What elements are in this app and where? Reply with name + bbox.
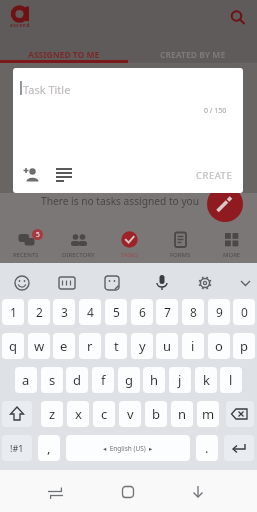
staticText: RECENTS	[13, 251, 39, 259]
staticText: 2	[36, 304, 43, 320]
staticText: Task Title	[23, 82, 71, 97]
staticText: t	[114, 337, 119, 355]
button[interactable]	[226, 401, 254, 427]
staticText: s	[49, 371, 56, 389]
button[interactable]: 0	[233, 299, 255, 325]
button[interactable]: z	[41, 401, 63, 427]
button[interactable]: 8	[182, 299, 204, 325]
staticText: There is no tasks assigned to you	[41, 194, 200, 208]
button[interactable]: u	[156, 333, 178, 359]
button[interactable]: .	[196, 435, 218, 461]
button[interactable]: h	[143, 367, 165, 393]
staticText: i	[191, 337, 195, 355]
button[interactable]: m	[197, 401, 219, 427]
button[interactable]: q	[2, 333, 24, 359]
staticText: ◂ English (US) ▸	[103, 444, 153, 453]
button[interactable]	[2, 401, 32, 427]
staticText: c	[101, 405, 108, 423]
button[interactable]: v	[119, 401, 141, 427]
button[interactable]	[224, 435, 254, 461]
button[interactable]	[185, 479, 211, 505]
button[interactable]	[226, 6, 250, 30]
button[interactable]: w	[28, 333, 50, 359]
staticText: ascend	[10, 22, 30, 28]
staticText: v	[127, 405, 134, 423]
staticText: b	[152, 405, 160, 423]
button[interactable]: t	[105, 333, 127, 359]
staticText: k	[203, 371, 210, 389]
button[interactable]	[19, 163, 43, 187]
button[interactable]	[42, 480, 68, 506]
button[interactable]: ASSIGNED TO ME	[0, 46, 128, 63]
button[interactable]: a	[15, 367, 37, 393]
staticText: 9	[216, 304, 223, 320]
button[interactable]	[207, 186, 243, 222]
button[interactable]: p	[233, 333, 255, 359]
staticText: ,	[47, 439, 51, 457]
button[interactable]: s	[41, 367, 63, 393]
button[interactable]: 3	[53, 299, 75, 325]
staticText: 7	[164, 304, 171, 320]
staticText: u	[163, 337, 172, 355]
button[interactable]: 5	[105, 299, 127, 325]
staticText: q	[9, 337, 17, 355]
staticText: n	[178, 405, 187, 423]
button[interactable]: 1	[2, 299, 24, 325]
button[interactable]	[115, 479, 141, 505]
button[interactable]: 7	[156, 299, 178, 325]
staticText: DIRECTORY	[62, 251, 95, 259]
staticText: MORE	[223, 251, 241, 259]
button[interactable]: !#1	[2, 435, 32, 461]
button[interactable]: g	[118, 367, 140, 393]
button[interactable]: CREATED BY ME	[128, 46, 257, 63]
button[interactable]: f	[92, 367, 114, 393]
staticText: 5	[113, 304, 120, 320]
button[interactable]: 2	[28, 299, 50, 325]
button[interactable]: 4	[79, 299, 101, 325]
button[interactable]: ,	[38, 435, 60, 461]
button[interactable]: 5	[0, 228, 52, 263]
staticText: m	[202, 405, 215, 423]
staticText: FORMS	[170, 251, 191, 259]
button[interactable]: k	[195, 367, 217, 393]
staticText: g	[125, 371, 133, 389]
staticText: o	[215, 337, 223, 355]
button[interactable]	[52, 163, 76, 187]
button[interactable]: i	[182, 333, 204, 359]
staticText: z	[49, 405, 56, 423]
staticText: !#1	[10, 442, 24, 454]
button[interactable]: c	[93, 401, 115, 427]
button[interactable]: r	[79, 333, 101, 359]
button[interactable]: FORMS	[155, 228, 206, 263]
staticText: p	[240, 337, 248, 355]
staticText: l	[229, 371, 233, 389]
staticText: w	[34, 337, 45, 355]
button[interactable]: o	[208, 333, 230, 359]
button[interactable]: MORE	[206, 228, 257, 263]
staticText: a	[22, 371, 30, 389]
button[interactable]: d	[66, 367, 88, 393]
button[interactable]: 9	[208, 299, 230, 325]
button[interactable]: x	[67, 401, 89, 427]
button[interactable]: e	[53, 333, 75, 359]
button[interactable]: DIRECTORY	[52, 228, 104, 263]
button[interactable]: l	[220, 367, 242, 393]
button[interactable]: TASKS	[104, 228, 155, 263]
button[interactable]: CREATE	[189, 164, 239, 186]
staticText: 0 / 150	[204, 106, 227, 116]
button[interactable]: n	[171, 401, 193, 427]
staticText: j	[178, 371, 182, 389]
button[interactable]: ◂ English (US) ▸	[66, 435, 190, 461]
button[interactable]: j	[169, 367, 191, 393]
button[interactable]: 6	[131, 299, 153, 325]
staticText: 3	[61, 304, 68, 320]
staticText: 4	[87, 304, 94, 320]
staticText: x	[75, 405, 82, 423]
button[interactable]: y	[131, 333, 153, 359]
button[interactable]: b	[145, 401, 167, 427]
staticText: d	[73, 371, 81, 389]
staticText: r	[87, 337, 93, 355]
staticText: ASSIGNED TO ME	[28, 49, 100, 61]
staticText: h	[150, 371, 159, 389]
staticText: 6	[139, 304, 146, 320]
